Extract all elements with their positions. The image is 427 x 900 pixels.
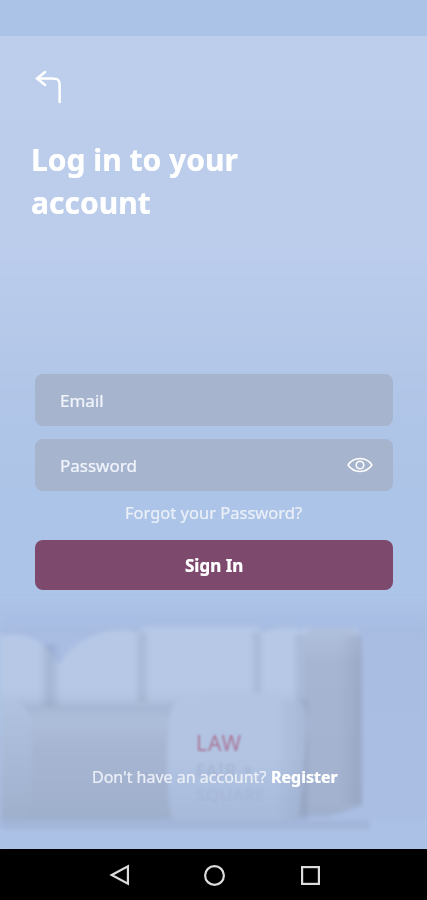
button[interactable]: Home [192, 853, 236, 897]
button[interactable]: Recent apps [288, 853, 332, 897]
staticText: LAW [196, 729, 243, 758]
button[interactable]: Don't have an account? [86, 764, 344, 790]
staticText: Don't have an account? [92, 766, 271, 788]
button[interactable]: Back [98, 853, 142, 897]
staticText: Email [60, 389, 104, 412]
staticText: FAIR + [196, 758, 254, 783]
button[interactable]: Back [29, 67, 69, 107]
staticText: Register [271, 766, 338, 788]
staticText: Password [60, 454, 137, 477]
button[interactable]: Sign In [35, 540, 393, 590]
staticText: Sign In [185, 554, 244, 577]
button[interactable]: Forgot your Password? [117, 499, 311, 525]
button[interactable]: Email [35, 374, 393, 426]
button[interactable]: Password [35, 439, 393, 491]
button[interactable]: Show password [343, 448, 377, 482]
staticText: Log in to your account [31, 139, 238, 223]
